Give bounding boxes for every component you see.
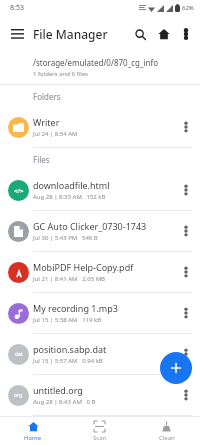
staticText: File Manager — [33, 26, 108, 42]
button[interactable]: Search — [128, 22, 152, 46]
staticText: 1 folders and 6 files — [33, 70, 88, 78]
staticText: Writer — [33, 116, 60, 128]
staticText: MobiPDF Help-Copy.pdf — [33, 261, 134, 273]
staticText: Aug 28 | 8:43 AM 0 B — [33, 398, 96, 406]
staticText: Jul 24 | 8:54 AM — [33, 130, 78, 138]
staticText: Scan — [93, 434, 107, 442]
staticText: 62% — [182, 4, 194, 12]
button[interactable]: Home — [0, 417, 66, 445]
button[interactable]: Writer — [0, 107, 200, 147]
button[interactable]: More options for Writer — [176, 117, 196, 137]
staticText: Aug 28 | 8:33 AM 152 kB — [33, 193, 106, 201]
staticText: /storage/emulated/0/870_cg_info — [33, 57, 159, 68]
staticText: GC Auto Clicker_0730-1743 — [33, 220, 147, 232]
staticText: </> — [14, 187, 24, 195]
button[interactable]: Add — [160, 352, 192, 384]
staticText: Files — [33, 154, 50, 165]
button[interactable]: </> — [0, 170, 200, 210]
staticText: 8:53 — [10, 3, 24, 13]
staticText: Jul 15 | 5:38 AM 119 kB — [33, 316, 102, 324]
button[interactable]: More options for My recording 1.mp3 — [176, 303, 196, 323]
staticText: Jul 15 | 5:57 AM 0.94 kB — [33, 357, 103, 365]
staticText: position.sabp.dat — [33, 343, 107, 355]
staticText: Clean — [159, 434, 175, 442]
staticText: Home — [24, 434, 42, 442]
button[interactable]: GC Auto Clicker_0730-1743 — [0, 211, 200, 251]
button[interactable]: org — [0, 375, 200, 415]
button[interactable]: More options for downloadfile.html — [176, 180, 196, 200]
button[interactable]: dat — [0, 334, 200, 374]
button[interactable]: More options for GC Auto Clicker_0730-17… — [176, 221, 196, 241]
staticText: Jul 21 | 8:41 AM 2.05 MB — [33, 275, 105, 283]
staticText: untitled.org — [33, 384, 83, 396]
button[interactable]: MobiPDF Help-Copy.pdf — [0, 252, 200, 292]
button[interactable]: Scan — [66, 417, 133, 445]
button[interactable]: Open navigation menu — [6, 23, 28, 45]
button[interactable]: More options for untitled.org — [176, 385, 196, 405]
staticText: My recording 1.mp3 — [33, 302, 118, 314]
button[interactable]: Clean — [133, 417, 200, 445]
button[interactable]: More options for MobiPDF Help-Copy.pdf — [176, 262, 196, 282]
button[interactable]: Home — [152, 22, 176, 46]
button[interactable]: More options for position.sabp.dat — [176, 344, 196, 364]
staticText: Jul 30 | 5:43 PM 549 B — [33, 234, 98, 242]
button[interactable]: More options — [176, 24, 196, 44]
staticText: org — [14, 392, 23, 399]
staticText: dat — [15, 351, 23, 358]
staticText: Folders — [33, 91, 61, 102]
staticText: downloadfile.html — [33, 179, 110, 191]
button[interactable]: My recording 1.mp3 — [0, 293, 200, 333]
